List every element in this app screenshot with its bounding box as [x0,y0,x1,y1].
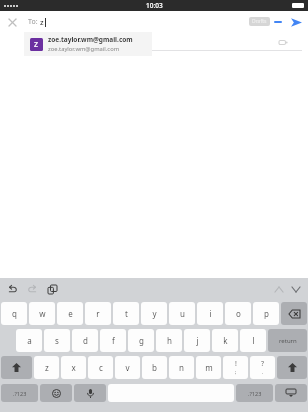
button[interactable]: b [142,356,167,379]
button[interactable]: Voice input [74,384,106,402]
button[interactable]: z [34,356,59,379]
staticText: . [262,369,264,376]
button[interactable]: Attach [276,35,290,49]
staticText: o [236,308,241,319]
staticText: Drafts [252,18,267,25]
staticText: l [252,335,255,346]
button[interactable]: q [1,302,27,325]
staticText: f [112,335,115,346]
button[interactable]: y [141,302,167,325]
button[interactable]: c [88,356,113,379]
staticText: return [279,337,297,345]
button[interactable]: ? [250,356,275,379]
button[interactable]: l [240,329,266,352]
staticText: ! [235,359,237,369]
button[interactable]: r [85,302,111,325]
staticText: ? [261,359,265,369]
button[interactable]: e [57,302,83,325]
button[interactable]: k [212,329,238,352]
staticText: u [180,308,185,319]
staticText: .?123 [248,390,262,397]
button[interactable]: w [29,302,55,325]
button[interactable]: d [72,329,98,352]
button[interactable]: Hide keyboard [275,384,307,402]
button[interactable]: Minimize [274,21,282,23]
staticText: g [139,335,144,346]
button[interactable]: Next [289,283,302,296]
button[interactable]: m [196,356,221,379]
button[interactable]: f [100,329,126,352]
staticText: s [55,335,59,346]
staticText: t [125,308,128,319]
staticText: d [83,335,88,346]
staticText: p [264,308,269,319]
staticText: z [40,17,44,27]
button[interactable]: Previous [272,283,285,296]
button[interactable]: v [115,356,140,379]
button[interactable]: Close [5,15,19,29]
staticText: z [45,362,49,373]
staticText: a [27,335,32,346]
staticText: m [205,362,213,373]
staticText: Z [34,40,39,50]
staticText: q [12,308,17,319]
button[interactable]: Clipboard [46,283,59,296]
button[interactable]: g [128,329,154,352]
button[interactable]: Numbers [236,384,273,402]
staticText: w [39,308,46,319]
button[interactable]: o [225,302,251,325]
staticText: 10:03 [146,1,163,10]
button[interactable]: Send [288,14,304,30]
button[interactable]: Shift [277,356,307,379]
staticText: c [99,362,103,373]
button[interactable]: Z [24,32,152,56]
button[interactable]: return [268,329,307,352]
button[interactable]: t [113,302,139,325]
staticText: b [152,362,157,373]
staticText: i [209,308,212,319]
staticText: x [71,362,76,373]
button[interactable]: i [197,302,223,325]
staticText: .?123 [13,390,27,397]
staticText: y [152,308,157,319]
staticText: v [125,362,130,373]
staticText: j [196,335,199,346]
staticText: n [179,362,184,373]
button[interactable]: j [184,329,210,352]
staticText: k [223,335,228,346]
button[interactable]: x [61,356,86,379]
staticText: r [96,308,100,319]
staticText: To: [28,17,40,27]
button[interactable]: Drafts [249,17,270,26]
button[interactable]: a [16,329,42,352]
button[interactable]: s [44,329,70,352]
staticText: zoe.taylor.wm@gmail.com [48,35,133,44]
button[interactable]: Numbers [1,384,38,402]
button[interactable]: Redo [26,283,39,296]
button[interactable]: p [253,302,279,325]
button[interactable]: h [156,329,182,352]
staticText: zoe.taylor.wm@gmail.com [48,45,120,53]
staticText: h [167,335,172,346]
button[interactable]: u [169,302,195,325]
button[interactable]: Undo [6,283,19,296]
staticText: e [68,308,73,319]
button[interactable]: n [169,356,194,379]
button[interactable]: Shift [1,356,32,379]
button[interactable]: Backspace [281,302,307,325]
button[interactable]: Emoji [40,384,72,402]
button[interactable]: ! [223,356,248,379]
staticText: ; [235,369,237,376]
